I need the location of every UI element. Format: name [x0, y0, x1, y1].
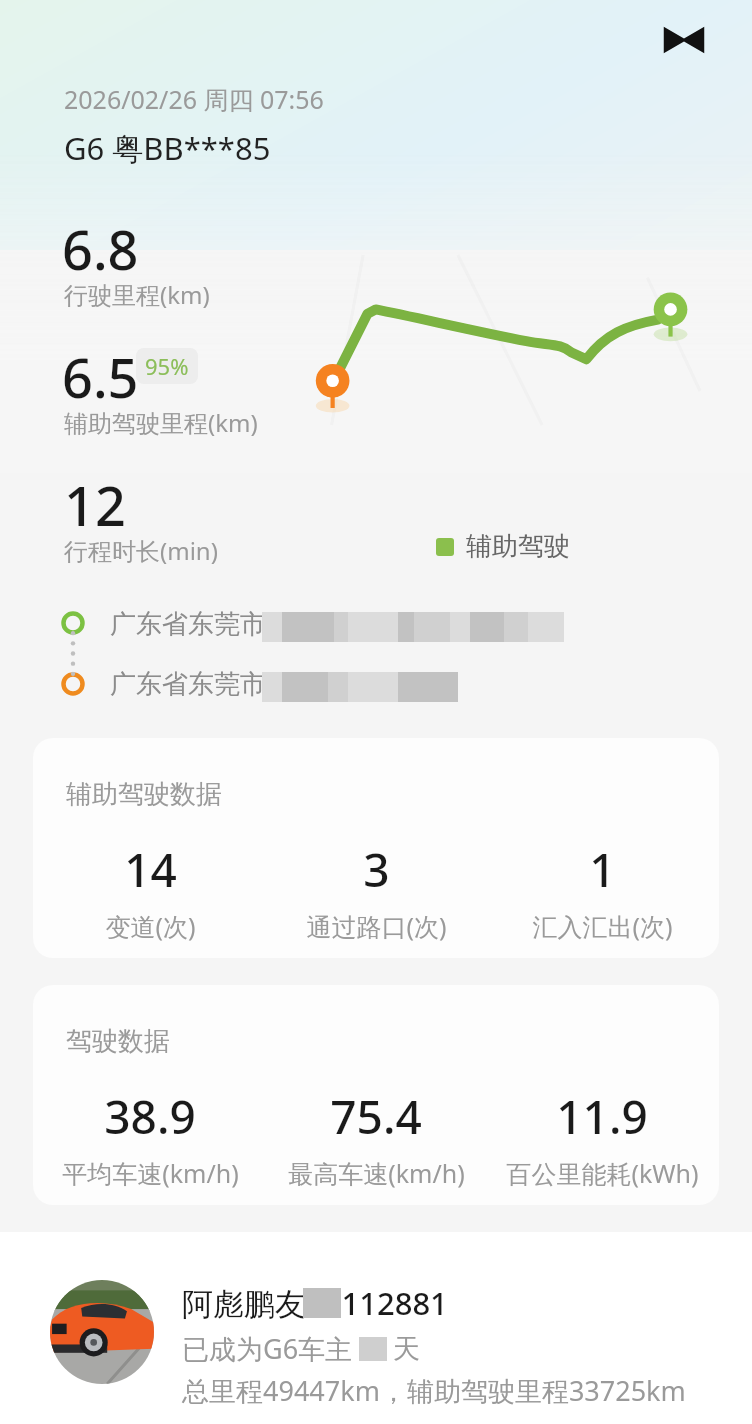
staticText: 14: [124, 838, 177, 901]
staticText: 广东省东莞市: [110, 668, 266, 701]
staticText: 最高车速(km/h): [288, 1156, 465, 1190]
staticText: 6.5: [62, 340, 139, 414]
button[interactable]: 驾驶数据: [33, 985, 719, 1205]
staticText: 百公里能耗(kWh): [506, 1156, 699, 1190]
staticText: 2026/02/26 周四 07:56: [64, 82, 324, 116]
staticText: 辅助驾驶: [466, 530, 570, 563]
staticText: 11.9: [556, 1085, 648, 1148]
staticText: 阿彪鹏友18112881: [182, 1282, 448, 1324]
staticText: 3: [363, 838, 390, 901]
staticText: 行驶里程(km): [64, 278, 210, 311]
staticText: 通过路口(次): [306, 909, 447, 943]
button[interactable]: 辅助驾驶数据: [33, 738, 719, 958]
staticText: 38.9: [104, 1085, 196, 1148]
staticText: 总里程49447km，辅助驾驶里程33725km: [182, 1372, 686, 1409]
staticText: 行程时长(min): [64, 534, 218, 567]
staticText: 平均车速(km/h): [62, 1156, 239, 1190]
staticText: 95%: [145, 351, 189, 381]
staticText: 辅助驾驶里程(km): [64, 406, 258, 439]
staticText: 辅助驾驶数据: [66, 778, 222, 811]
staticText: 驾驶数据: [66, 1025, 170, 1058]
staticText: 变道(次): [105, 909, 196, 943]
staticText: 广东省东莞市: [110, 608, 266, 641]
staticText: 1: [589, 838, 616, 901]
staticText: 已成为G6车主: [182, 1330, 353, 1367]
staticText: G6 粤BB***85: [64, 127, 271, 169]
staticText: 天: [393, 1332, 420, 1366]
button[interactable]: 阿彪鹏友18112881: [0, 1232, 752, 1424]
staticText: 12: [64, 468, 126, 542]
staticText: 汇入汇出(次): [532, 909, 673, 943]
staticText: 75.4: [330, 1085, 422, 1148]
staticText: 6.8: [62, 212, 139, 286]
button[interactable]: Close: [652, 8, 716, 72]
